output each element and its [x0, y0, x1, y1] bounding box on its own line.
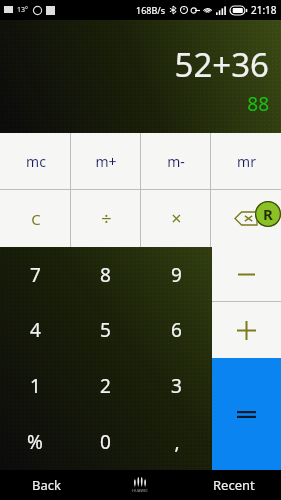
- button[interactable]: [212, 302, 281, 358]
- button[interactable]: ÷: [71, 190, 141, 247]
- button[interactable]: Badge: [255, 201, 281, 227]
- staticText: 4: [30, 317, 41, 343]
- staticText: 6: [171, 317, 182, 343]
- staticText: Recent: [213, 476, 255, 494]
- staticText: 8: [100, 262, 111, 288]
- staticText: ×: [171, 206, 182, 231]
- staticText: HUAWEI: [132, 488, 148, 493]
- staticText: 168B/s: [136, 4, 165, 16]
- button[interactable]: 8: [70, 247, 141, 302]
- staticText: 9: [171, 262, 182, 288]
- button[interactable]: mc: [0, 133, 71, 189]
- staticText: Back: [32, 476, 61, 494]
- button[interactable]: Home: [93, 470, 187, 500]
- button[interactable]: m-: [141, 133, 211, 189]
- staticText: %: [27, 429, 43, 455]
- button[interactable]: ,: [141, 414, 212, 470]
- staticText: m-: [167, 152, 185, 171]
- button[interactable]: 1: [0, 358, 70, 414]
- button[interactable]: 0: [70, 414, 141, 470]
- staticText: 52+36: [174, 42, 269, 87]
- staticText: 5: [100, 317, 111, 343]
- staticText: mr: [237, 152, 256, 171]
- button[interactable]: 6: [141, 302, 212, 358]
- staticText: 88: [247, 91, 269, 117]
- button[interactable]: 4: [0, 302, 70, 358]
- button[interactable]: [212, 247, 281, 302]
- button[interactable]: 7: [0, 247, 70, 302]
- staticText: 3: [171, 373, 182, 399]
- staticText: 0: [100, 429, 111, 455]
- staticText: 7: [30, 262, 41, 288]
- staticText: ,: [174, 429, 180, 455]
- button[interactable]: 3: [141, 358, 212, 414]
- staticText: 2: [100, 373, 111, 399]
- staticText: 13°: [17, 5, 29, 15]
- button[interactable]: 9: [141, 247, 212, 302]
- button[interactable]: m+: [71, 133, 141, 189]
- button[interactable]: Backspace: [211, 190, 281, 247]
- staticText: R: [263, 204, 273, 224]
- button[interactable]: mr: [211, 133, 281, 189]
- button[interactable]: [212, 358, 281, 470]
- button[interactable]: Recent: [187, 470, 281, 500]
- button[interactable]: %: [0, 414, 70, 470]
- button[interactable]: 5: [70, 302, 141, 358]
- button[interactable]: C: [0, 190, 71, 247]
- staticText: 21:18: [251, 3, 277, 17]
- staticText: m+: [95, 152, 117, 171]
- staticText: ÷: [101, 206, 112, 231]
- staticText: C: [31, 209, 41, 229]
- staticText: 1: [30, 373, 41, 399]
- button[interactable]: ×: [141, 190, 211, 247]
- staticText: mc: [26, 152, 46, 171]
- button[interactable]: 2: [70, 358, 141, 414]
- button[interactable]: Back: [0, 470, 93, 500]
